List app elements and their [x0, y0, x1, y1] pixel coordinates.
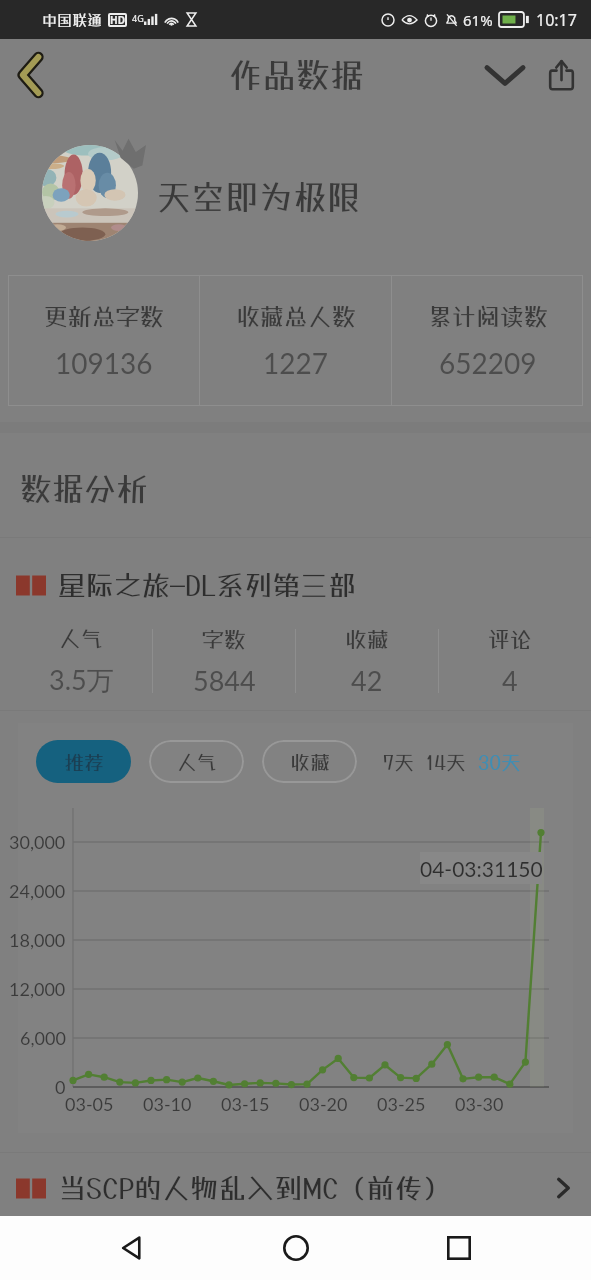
staticText: 当SCP的人物乱入到MC（前传） — [58, 1172, 451, 1205]
staticText: 人气 — [177, 750, 217, 774]
staticText: 7天 — [383, 750, 415, 774]
button[interactable]: Recents — [427, 1216, 491, 1280]
staticText: 收藏总人数 — [236, 302, 356, 330]
staticText: 30,000 — [9, 831, 66, 853]
staticText: 6,000 — [20, 1027, 66, 1049]
staticText: 24,000 — [9, 880, 66, 902]
staticText: 评论 — [488, 626, 533, 652]
staticText: 18,000 — [9, 929, 66, 951]
staticText: 03-15 — [221, 1093, 270, 1115]
staticText: 12,000 — [9, 978, 66, 1000]
staticText: 1227 — [263, 346, 328, 380]
staticText: 61% — [463, 10, 493, 30]
button[interactable]: 收藏 — [262, 740, 357, 783]
button[interactable]: Share — [533, 47, 589, 103]
staticText: 推荐 — [64, 750, 104, 774]
button[interactable]: 推荐 — [36, 740, 131, 783]
button[interactable]: 当SCP的人物乱入到MC（前传） — [16, 1160, 575, 1216]
button[interactable]: 人气 — [149, 740, 244, 783]
staticText: 03-25 — [377, 1093, 426, 1115]
staticText: 109136 — [55, 346, 153, 380]
staticText: 3.5万 — [49, 663, 114, 698]
staticText: 人气 — [59, 625, 104, 651]
staticText: 4 — [502, 664, 518, 696]
button[interactable]: Home — [264, 1216, 328, 1280]
staticText: 10:17 — [536, 9, 577, 31]
staticText: 03-30 — [455, 1093, 504, 1115]
staticText: 4G — [132, 12, 144, 24]
staticText: 5844 — [193, 664, 256, 696]
staticText: 03-05 — [65, 1093, 114, 1115]
staticText: 收藏 — [345, 626, 390, 652]
staticText: 03-20 — [299, 1093, 348, 1115]
staticText: 收藏 — [290, 750, 330, 774]
staticText: 0 — [55, 1076, 66, 1098]
staticText: 中国联通 — [42, 11, 103, 29]
staticText: 数据分析 — [20, 470, 149, 508]
staticText: 累计阅读数 — [428, 302, 548, 330]
staticText: 03-10 — [143, 1093, 192, 1115]
staticText: 42 — [351, 664, 383, 696]
staticText: HD — [110, 13, 125, 27]
button[interactable]: Back — [2, 47, 58, 103]
button[interactable]: Expand — [477, 47, 533, 103]
staticText: 作品数据 — [228, 55, 364, 95]
staticText: 星际之旅—DL系列第三部 — [58, 569, 357, 602]
staticText: 天空即为极限 — [157, 177, 361, 217]
staticText: 字数 — [202, 626, 247, 652]
staticText: 14天 — [426, 750, 467, 774]
staticText: 更新总字数 — [44, 302, 164, 330]
button[interactable]: Back — [100, 1216, 164, 1280]
staticText: 04-03:31150 — [420, 856, 542, 881]
staticText: 652209 — [439, 346, 537, 380]
staticText: 30天 — [478, 750, 522, 774]
